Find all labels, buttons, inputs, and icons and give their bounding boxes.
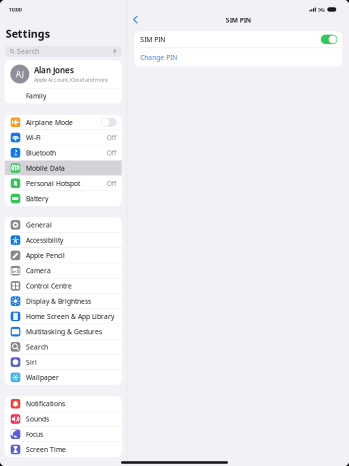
staticText: Wallpaper [26,373,59,382]
staticText: Screen Time [26,445,66,454]
staticText: Sounds [26,415,49,423]
staticText: Focus [26,430,43,439]
button[interactable]: Mobile Data [5,161,122,175]
staticText: Off [107,133,117,142]
staticText: SIM PIN [226,16,251,24]
button[interactable]: Focus [5,427,122,442]
staticText: Personal Hotspot [26,179,80,188]
staticText: Family [26,91,46,100]
button[interactable]: Wi-Fi [5,130,122,145]
button[interactable]: Airplane Mode [5,115,122,130]
button[interactable]: Notifications [5,396,122,411]
button[interactable]: Family [5,89,122,103]
staticText: Control Centre [26,281,72,290]
staticText: AJ [16,69,24,79]
button[interactable]: Camera [5,263,122,278]
staticText: SIM PIN [140,35,165,44]
staticText: Display & Brightness [26,297,91,306]
button[interactable]: Bluetooth [5,145,122,160]
staticText: Search [17,47,39,56]
button[interactable]: Home Screen & App Library [5,309,122,324]
staticText: Alan Jones [34,65,74,75]
staticText: Change PIN [140,53,177,62]
button[interactable]: Screen Time [5,442,122,457]
staticText: Settings [6,26,50,41]
button[interactable]: Siri [5,355,122,370]
staticText: Mobile Data [26,164,65,172]
staticText: Camera [26,266,51,275]
button[interactable]: General [5,217,122,232]
staticText: Bluetooth [26,148,56,157]
button[interactable]: Accessibility [5,233,122,248]
staticText: Notifications [26,399,65,408]
staticText: Multitasking & Gestures [26,327,102,336]
button[interactable]: Sounds [5,412,122,426]
staticText: Accessibility [26,236,63,245]
staticText: Apple Pencil [26,251,65,260]
staticText: Siri [26,358,37,367]
button[interactable]: AJ [5,60,122,88]
staticText: 5G [318,6,325,13]
button[interactable]: Back [130,13,144,27]
staticText: Wi-Fi [26,133,41,142]
button[interactable]: Personal Hotspot [5,176,122,191]
staticText: 10:00 [9,6,22,13]
button[interactable]: Change PIN [134,48,342,67]
button[interactable]: Apple Pencil [5,248,122,263]
button[interactable]: Multitasking & Gestures [5,324,122,339]
button[interactable]: Wallpaper [5,370,122,385]
staticText: Off [107,148,117,157]
staticText: Search [26,342,48,351]
button[interactable]: Battery [5,191,122,206]
staticText: Home Screen & App Library [26,312,114,321]
staticText: Battery [26,194,48,203]
button[interactable]: Control Centre [5,278,122,293]
staticText: General [26,220,52,229]
staticText: Airplane Mode [26,118,73,127]
button[interactable]: Search [5,339,122,354]
button[interactable]: Search [5,46,121,57]
button[interactable]: SIM PIN [134,31,342,48]
button[interactable]: Display & Brightness [5,294,122,309]
staticText: Apple Account, iCloud and more [34,76,108,83]
staticText: Off [107,179,117,188]
